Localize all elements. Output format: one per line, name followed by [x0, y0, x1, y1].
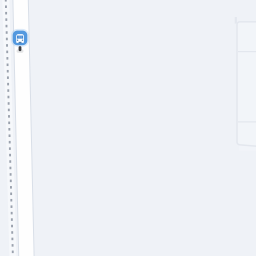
button[interactable]: Bus stop [6, 30, 34, 54]
